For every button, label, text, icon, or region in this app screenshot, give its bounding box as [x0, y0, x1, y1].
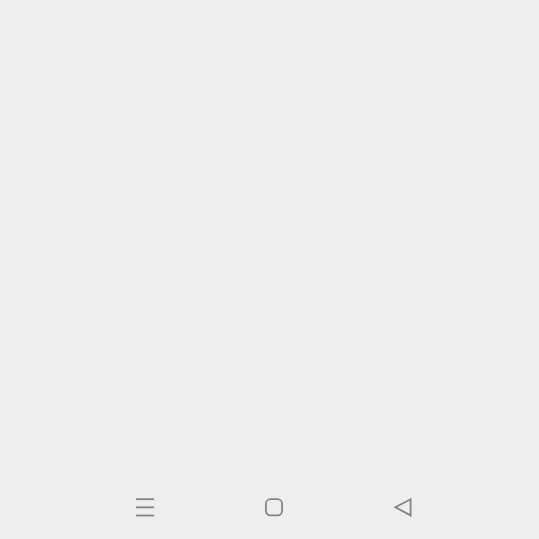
button[interactable]: Home [250, 483, 298, 531]
button[interactable]: Menu [121, 483, 169, 531]
button[interactable]: Back [379, 483, 427, 531]
